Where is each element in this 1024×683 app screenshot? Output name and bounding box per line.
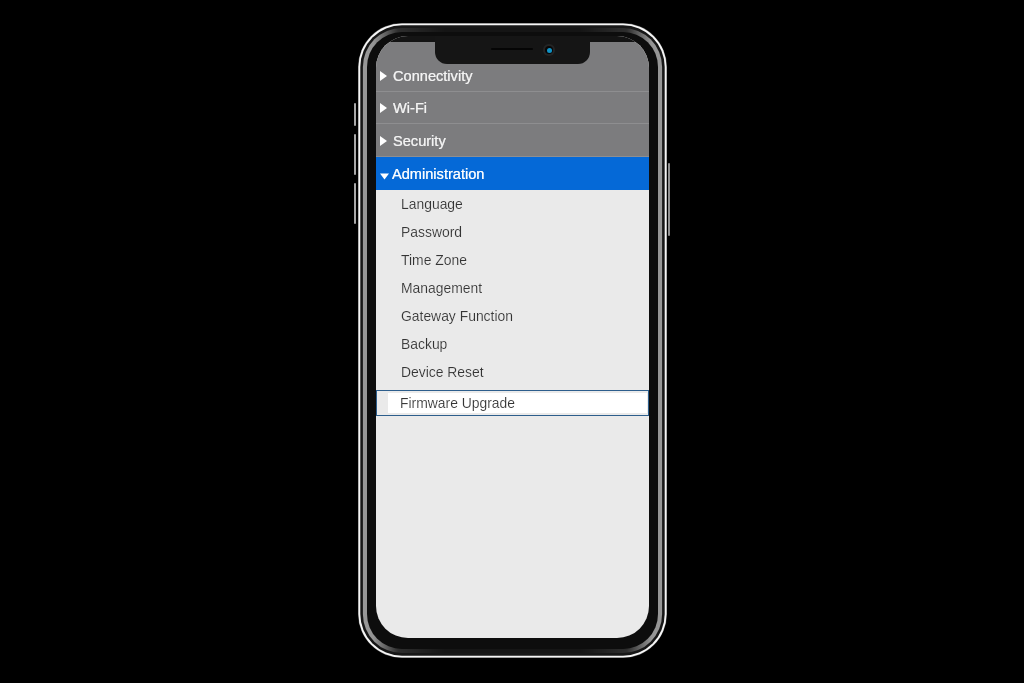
staticText: Device Reset <box>401 364 484 380</box>
staticText: Management <box>401 280 483 296</box>
staticText: Password <box>401 224 462 240</box>
button[interactable]: Wi-Fi <box>376 92 649 124</box>
button[interactable]: Security <box>376 124 649 157</box>
button[interactable]: Language <box>376 190 649 218</box>
staticText: Wi-Fi <box>393 100 428 116</box>
button[interactable]: Power <box>668 163 670 236</box>
staticText: Language <box>401 196 463 212</box>
button[interactable]: Gateway Function <box>376 302 649 330</box>
button[interactable]: Volume up <box>354 134 356 175</box>
button[interactable]: Time Zone <box>376 246 649 274</box>
button[interactable]: Connectivity <box>376 42 649 92</box>
button[interactable]: Silent switch <box>354 103 356 126</box>
staticText: Security <box>393 133 446 149</box>
button[interactable]: Backup <box>376 330 649 358</box>
button[interactable]: Password <box>376 218 649 246</box>
staticText: Gateway Function <box>401 308 513 324</box>
button[interactable]: Management <box>376 274 649 302</box>
button[interactable]: Administration <box>376 157 649 190</box>
staticText: Connectivity <box>393 68 473 84</box>
staticText: Firmware Upgrade <box>400 395 516 411</box>
button[interactable]: Volume down <box>354 183 356 224</box>
staticText: Backup <box>401 336 448 352</box>
staticText: Administration <box>392 166 485 182</box>
button[interactable]: Firmware Upgrade <box>376 386 649 415</box>
staticText: Time Zone <box>401 252 467 268</box>
button[interactable]: Device Reset <box>376 358 649 386</box>
